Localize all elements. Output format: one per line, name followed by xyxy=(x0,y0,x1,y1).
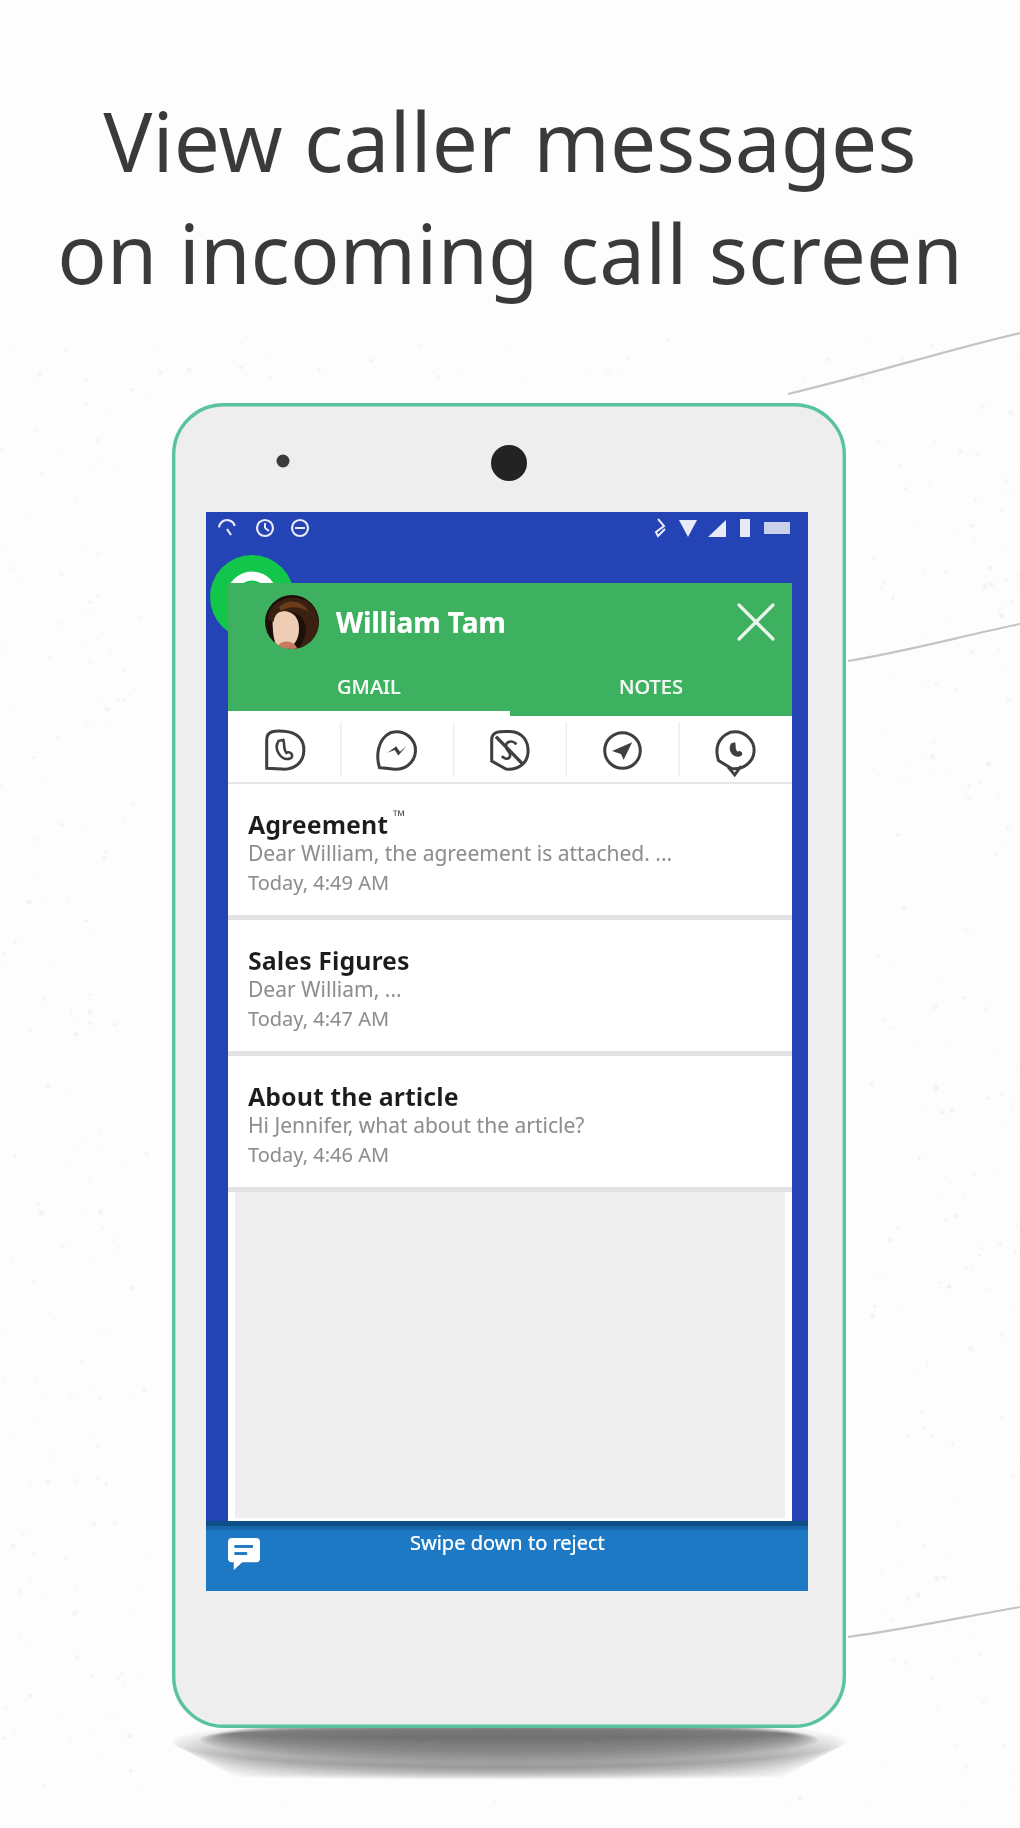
staticText: Today, 4:49 AM xyxy=(248,869,390,896)
button[interactable]: Messages xyxy=(206,1521,808,1591)
button[interactable]: NOTES xyxy=(510,661,792,711)
button[interactable]: WhatsApp xyxy=(228,716,340,784)
staticText: Today, 4:46 AM xyxy=(248,1141,390,1168)
button[interactable]: Messenger xyxy=(340,716,453,784)
button[interactable]: Sales Figures xyxy=(228,920,792,1051)
button[interactable]: Agreement xyxy=(228,784,792,915)
staticText: on incoming call screen xyxy=(57,196,963,308)
button[interactable]: Telegram xyxy=(566,716,679,784)
staticText: Agreement xyxy=(248,807,389,841)
staticText: ™ xyxy=(393,805,406,827)
staticText: Dear William, ... xyxy=(248,975,402,1004)
staticText: About the article xyxy=(248,1079,459,1113)
staticText: Hi Jennifer, what about the article? xyxy=(248,1111,585,1140)
staticText: Dear William, the agreement is attached.… xyxy=(248,839,673,868)
staticText: NOTES xyxy=(619,673,683,700)
button[interactable]: GMAIL xyxy=(228,661,510,711)
staticText: Swipe down to reject xyxy=(410,1529,605,1556)
button[interactable]: Skype xyxy=(453,716,566,784)
staticText: View caller messages xyxy=(103,84,917,196)
button[interactable]: Messages xyxy=(228,1538,260,1570)
staticText: William Tam xyxy=(336,603,506,641)
button[interactable]: Close xyxy=(729,595,783,649)
button[interactable]: Viber xyxy=(679,716,792,784)
staticText: Sales Figures xyxy=(248,943,410,977)
staticText: Today, 4:47 AM xyxy=(248,1005,390,1032)
staticText: GMAIL xyxy=(337,673,401,700)
button[interactable]: Answer call xyxy=(210,555,294,639)
button[interactable]: About the article xyxy=(228,1056,792,1187)
